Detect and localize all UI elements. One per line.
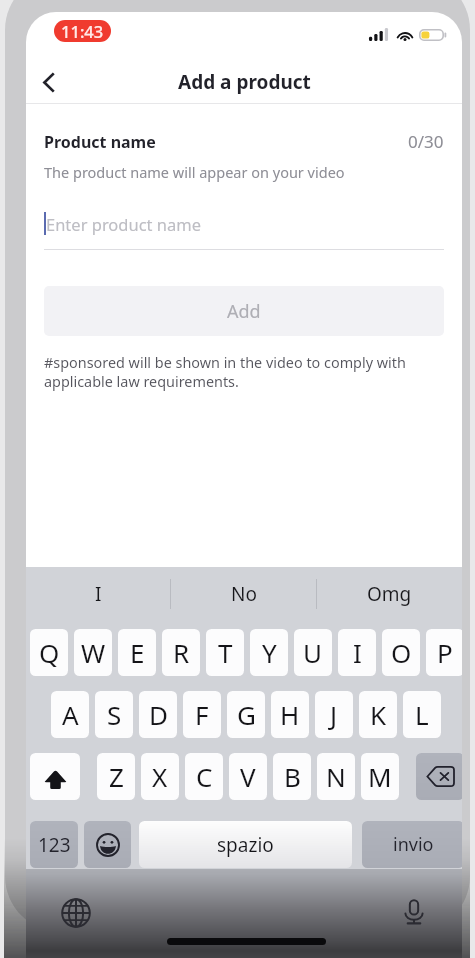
button[interactable]: I (26, 567, 170, 621)
staticText: D (149, 697, 168, 732)
staticText: Y (262, 635, 277, 670)
staticText: M (368, 759, 392, 794)
button[interactable]: Z (97, 753, 135, 800)
staticText: 123 (38, 832, 71, 858)
staticText: I (95, 581, 102, 607)
button[interactable]: Emoji (84, 821, 131, 868)
staticText: L (415, 697, 429, 732)
button[interactable]: G (227, 691, 265, 738)
staticText: T (218, 635, 233, 670)
staticText: S (107, 697, 122, 732)
staticText: G (237, 697, 256, 732)
button[interactable]: U (294, 629, 332, 676)
staticText: C (196, 759, 213, 794)
staticText: R (173, 635, 190, 670)
staticText: H (280, 697, 300, 732)
button[interactable]: N (317, 753, 355, 800)
button[interactable]: Add (44, 286, 444, 336)
button[interactable]: V (229, 753, 267, 800)
staticText: W (81, 635, 106, 670)
button[interactable]: Enter product name (44, 202, 444, 250)
staticText: spazio (217, 832, 274, 858)
button[interactable]: S (95, 691, 133, 738)
button[interactable]: X (141, 753, 179, 800)
button[interactable]: invio (362, 821, 462, 868)
button[interactable]: Dictate (392, 890, 436, 934)
button[interactable]: I (338, 629, 376, 676)
button[interactable]: A (51, 691, 89, 738)
staticText: The product name will appear on your vid… (44, 162, 345, 182)
staticText: #sponsored will be shown in the video to… (44, 353, 406, 391)
staticText: Z (109, 759, 124, 794)
staticText: N (326, 759, 346, 794)
staticText: Enter product name (46, 213, 202, 235)
staticText: J (330, 697, 338, 732)
button[interactable]: J (315, 691, 353, 738)
button[interactable]: Recording timer (54, 20, 111, 42)
staticText: B (284, 759, 301, 794)
button[interactable]: No (171, 567, 316, 621)
staticText: Add a product (178, 69, 311, 95)
button[interactable]: M (361, 753, 399, 800)
staticText: No (231, 581, 257, 607)
staticText: K (370, 697, 387, 732)
staticText: A (62, 697, 79, 732)
button[interactable]: Omg (317, 567, 462, 621)
button[interactable]: C (185, 753, 223, 800)
button[interactable]: 123 (30, 821, 78, 868)
button[interactable]: Change keyboard (54, 891, 98, 935)
button[interactable]: O (382, 629, 420, 676)
button[interactable]: Back (26, 60, 70, 104)
button[interactable]: E (118, 629, 156, 676)
staticText: O (391, 635, 412, 670)
button[interactable]: P (426, 629, 462, 676)
button[interactable]: H (271, 691, 309, 738)
staticText: 11:43 (61, 20, 104, 42)
staticText: P (437, 635, 453, 670)
button[interactable]: W (74, 629, 112, 676)
button[interactable]: D (139, 691, 177, 738)
staticText: Q (39, 635, 60, 670)
staticText: Product name (44, 131, 156, 153)
button[interactable]: K (359, 691, 397, 738)
button[interactable]: B (273, 753, 311, 800)
button[interactable]: F (183, 691, 221, 738)
staticText: F (195, 697, 209, 732)
staticText: X (152, 759, 168, 794)
staticText: U (303, 635, 323, 670)
button[interactable]: Q (30, 629, 68, 676)
staticText: 0/30 (408, 130, 444, 153)
button[interactable]: T (206, 629, 244, 676)
button[interactable]: Backspace (416, 753, 462, 800)
staticText: V (240, 759, 256, 794)
staticText: E (130, 635, 145, 670)
staticText: invio (393, 832, 434, 857)
button[interactable]: Shift (30, 753, 80, 800)
staticText: Add (227, 299, 261, 324)
staticText: I (353, 635, 362, 670)
button[interactable]: spazio (139, 821, 352, 868)
button[interactable]: L (403, 691, 441, 738)
staticText: Omg (367, 581, 412, 607)
button[interactable]: Y (250, 629, 288, 676)
button[interactable]: R (162, 629, 200, 676)
